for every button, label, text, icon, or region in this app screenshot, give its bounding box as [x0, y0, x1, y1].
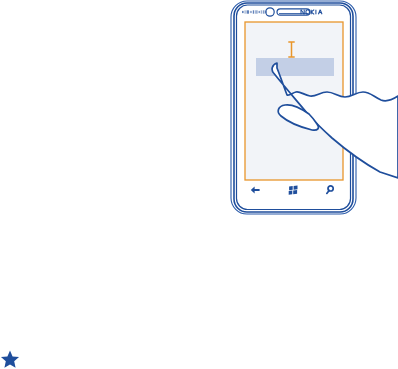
button[interactable]: Nokia Lumia touch gesture illustration [0, 0, 398, 369]
